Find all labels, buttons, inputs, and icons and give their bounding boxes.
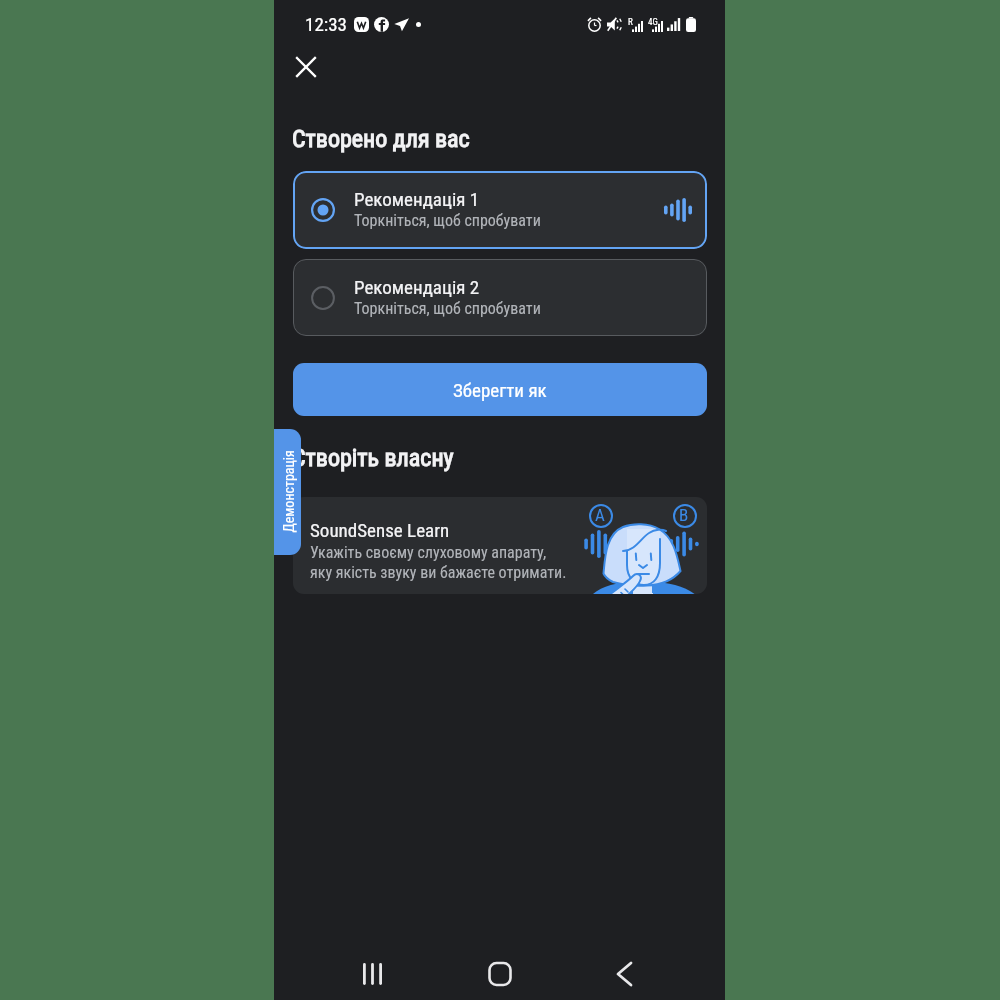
button[interactable]: Зберегти як (293, 363, 707, 416)
button[interactable]: Рекомендація 1 (293, 171, 707, 249)
staticText: B (679, 505, 689, 525)
staticText: Створено для вас (292, 125, 470, 153)
staticText: Зберегти як (453, 379, 547, 401)
staticText: Торкніться, щоб спробувати (354, 299, 541, 318)
staticText: Рекомендація 1 (354, 188, 480, 210)
button[interactable]: Back (600, 950, 648, 998)
staticText: Рекомендація 2 (354, 276, 480, 298)
staticText: 4G (648, 17, 658, 28)
staticText: A (595, 505, 605, 525)
button[interactable]: SoundSense Learn (293, 497, 707, 594)
button[interactable]: Демонстрація (274, 429, 301, 555)
staticText: R (628, 17, 633, 28)
staticText: Створіть власну (292, 444, 454, 472)
staticText: Укажіть своєму слуховому апарату, яку як… (310, 543, 567, 582)
staticText: SoundSense Learn (310, 519, 450, 541)
button[interactable]: Home (476, 950, 524, 998)
button[interactable]: Рекомендація 2 (293, 259, 707, 336)
staticText: Торкніться, щоб спробувати (354, 211, 541, 230)
button[interactable]: Close (284, 45, 328, 89)
staticText: Демонстрація (280, 449, 296, 532)
staticText: 12:33 (305, 13, 347, 35)
button[interactable]: Recents (348, 950, 396, 998)
